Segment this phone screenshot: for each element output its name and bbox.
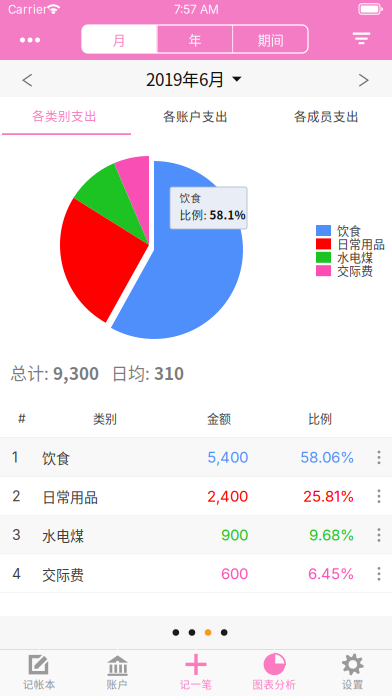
- staticText: 月: [113, 30, 126, 48]
- staticText: 交际费: [337, 262, 373, 280]
- staticText: 账户: [107, 676, 129, 692]
- staticText: 各成员支出: [294, 107, 359, 125]
- staticText: 年: [188, 30, 201, 48]
- staticText: 饮食: [179, 190, 201, 205]
- button[interactable]: 年: [158, 25, 232, 53]
- staticText: 9.68%: [309, 526, 355, 544]
- staticText: #: [18, 411, 26, 426]
- button[interactable]: 账户: [78, 649, 157, 696]
- staticText: 5,400: [207, 448, 248, 466]
- staticText: 9,300: [53, 360, 99, 385]
- button[interactable]: 各账户支出: [130, 97, 261, 135]
- staticText: 图表分析: [252, 676, 296, 692]
- staticText: 水电煤: [337, 249, 373, 266]
- staticText: 58.06%: [300, 448, 355, 466]
- button[interactable]: 记帐本: [0, 649, 78, 696]
- button[interactable]: 期间: [233, 25, 308, 53]
- staticText: 600: [221, 565, 248, 583]
- button[interactable]: Next month: [336, 60, 392, 97]
- staticText: 6.45%: [308, 565, 355, 583]
- staticText: 期间: [258, 30, 284, 48]
- staticText: 2: [12, 488, 21, 505]
- staticText: 比例:: [179, 206, 206, 223]
- button[interactable]: Filter: [334, 20, 390, 60]
- button[interactable]: 月: [82, 25, 157, 53]
- button[interactable]: 各类别支出: [0, 97, 130, 135]
- staticText: 比例: [308, 410, 332, 427]
- button[interactable]: 3: [0, 516, 392, 554]
- staticText: Carrier: [8, 2, 47, 16]
- staticText: 类别: [93, 410, 117, 427]
- staticText: 2019年6月: [146, 66, 225, 91]
- staticText: 水电煤: [42, 525, 84, 545]
- button[interactable]: 2019年6月: [144, 60, 244, 97]
- staticText: 总计:: [10, 360, 53, 385]
- staticText: 900: [221, 526, 248, 544]
- staticText: 日常用品: [337, 235, 385, 253]
- button[interactable]: 各成员支出: [261, 97, 392, 135]
- button[interactable]: 图表分析: [235, 649, 314, 696]
- button[interactable]: More options: [0, 20, 60, 60]
- staticText: 记帐本: [23, 676, 56, 692]
- staticText: 设置: [342, 676, 364, 692]
- staticText: 7:57 AM: [174, 2, 219, 16]
- staticText: 交际费: [42, 564, 84, 584]
- staticText: 日均:: [99, 360, 154, 385]
- button[interactable]: Previous month: [0, 60, 56, 97]
- staticText: 各类别支出: [32, 106, 97, 125]
- button[interactable]: 1: [0, 438, 392, 477]
- staticText: 310: [154, 360, 184, 385]
- staticText: 金额: [207, 410, 231, 427]
- button[interactable]: 4: [0, 554, 392, 593]
- staticText: 3: [12, 526, 21, 543]
- staticText: 饮食: [337, 222, 361, 239]
- button[interactable]: 设置: [314, 649, 392, 696]
- staticText: 58.1%: [209, 206, 245, 223]
- staticText: 饮食: [42, 447, 70, 468]
- button[interactable]: 2: [0, 477, 392, 516]
- staticText: 25.81%: [303, 487, 355, 505]
- staticText: 各账户支出: [163, 107, 228, 125]
- staticText: 1: [12, 449, 18, 466]
- staticText: 日常用品: [42, 486, 98, 506]
- staticText: 4: [12, 565, 21, 582]
- button[interactable]: 记一笔: [157, 649, 235, 696]
- staticText: 记一笔: [179, 676, 212, 692]
- staticText: 2,400: [207, 487, 248, 505]
